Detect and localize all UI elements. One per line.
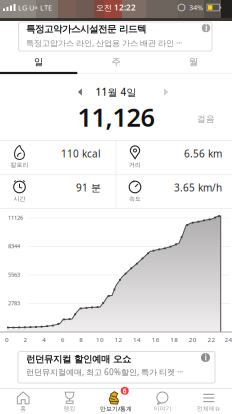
staticText: 11,126 — [77, 100, 154, 134]
button[interactable]: 6 — [93, 389, 139, 414]
staticText: LG U+ LTE — [18, 2, 52, 13]
staticText: 거리 — [129, 161, 141, 168]
staticText: 8344 — [8, 242, 20, 250]
button[interactable]: 광고 정보 — [201, 353, 210, 362]
staticText: 22 — [207, 335, 215, 344]
staticText: 칼로리 — [10, 161, 28, 168]
staticText: 6 — [123, 386, 127, 395]
staticText: 주 — [111, 56, 120, 68]
staticText: 걸음 — [197, 114, 215, 124]
button[interactable]: 일 — [0, 51, 77, 73]
staticText: 14 — [133, 335, 141, 344]
staticText: 6.56 km — [184, 147, 222, 160]
staticText: 4 — [42, 335, 46, 344]
staticText: 20 — [189, 335, 197, 344]
staticText: 16 — [152, 335, 160, 344]
staticText: 일 — [34, 56, 43, 68]
staticText: 34% — [189, 3, 203, 12]
button[interactable]: 이전 날짜 — [72, 86, 88, 98]
staticText: 0 — [5, 335, 9, 344]
staticText: 런던뮤지컬 할인예매 오쇼 — [26, 353, 131, 365]
staticText: 런던뮤지컬예매, 최고 60%할인, 특가 티켓 ··· — [26, 366, 183, 378]
staticText: 만보기/통계 — [100, 404, 132, 412]
staticText: 91 분 — [76, 181, 101, 194]
staticText: 8 — [79, 335, 83, 344]
staticText: 전체메뉴 — [197, 405, 221, 412]
button[interactable]: 주 — [77, 51, 155, 73]
button[interactable]: 월 — [155, 51, 232, 73]
staticText: 홈 — [20, 405, 26, 412]
staticText: 2 — [24, 335, 28, 344]
staticText: 랭킹 — [64, 405, 76, 412]
staticText: 11월 4일 — [95, 85, 136, 99]
button[interactable]: 전체메뉴 — [186, 389, 232, 414]
button[interactable]: 런던뮤지컬 할인예매 오쇼 — [17, 351, 215, 384]
staticText: 이야기 — [153, 405, 171, 412]
staticText: 5563 — [8, 271, 20, 278]
staticText: i — [205, 23, 207, 33]
staticText: 속도 — [129, 195, 141, 202]
button[interactable]: 특정고악가스시설전문 리드텍 — [18, 21, 212, 51]
button[interactable]: 이야기 — [139, 389, 186, 414]
staticText: 12 — [114, 335, 122, 344]
staticText: i — [204, 352, 206, 363]
staticText: 특정고압가스 라인, 산업용 가스 배관 라인 ··· — [26, 37, 182, 49]
staticText: 10 — [96, 335, 104, 344]
staticText: 110 kcal — [61, 147, 101, 160]
button[interactable]: 랭킹 — [46, 389, 93, 414]
staticText: 월 — [189, 56, 198, 68]
button[interactable]: 홈 — [0, 389, 46, 414]
staticText: 11126 — [8, 214, 23, 221]
staticText: 시간 — [13, 195, 25, 202]
staticText: 6 — [61, 335, 65, 344]
staticText: 18 — [170, 335, 178, 344]
button[interactable]: 광고 정보 — [202, 24, 210, 32]
staticText: 3.65 km/h — [174, 181, 222, 194]
button[interactable]: 다음 날짜 — [158, 86, 174, 98]
staticText: 24 — [224, 335, 232, 344]
staticText: 특정고악가스시설전문 리드텍 — [26, 23, 146, 35]
staticText: 오전 12:22 — [96, 2, 136, 13]
staticText: 2783 — [8, 299, 20, 307]
